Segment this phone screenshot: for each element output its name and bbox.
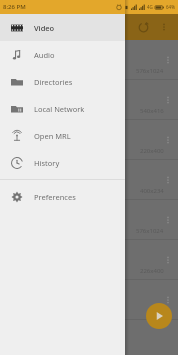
button[interactable]: History (0, 149, 125, 176)
button[interactable]: Play (146, 303, 172, 329)
staticText: Open MRL (34, 131, 71, 141)
staticText: Audio (34, 50, 55, 60)
button[interactable]: 400x234 (0, 160, 178, 200)
staticText: 8:26 PM (3, 3, 26, 11)
staticText: VID_20180101_094061452 (4, 44, 90, 54)
staticText: Local Network (34, 104, 85, 114)
staticText: 4G (147, 4, 153, 10)
button[interactable]: Open MRL (0, 122, 125, 149)
staticText: 576x1024 (136, 67, 164, 75)
button[interactable]: VID_20180101_094061452 (0, 40, 178, 80)
button[interactable]: Video (0, 14, 125, 41)
button[interactable]: 220x400 (0, 120, 178, 160)
button[interactable]: More options (154, 17, 174, 37)
button[interactable]: Item options (161, 133, 175, 147)
button[interactable]: Item options (161, 93, 175, 107)
button[interactable]: Item options (161, 253, 175, 267)
button[interactable]: Audio (0, 41, 125, 68)
button[interactable]: Directories (0, 68, 125, 95)
staticText: Directories (34, 77, 73, 87)
button[interactable]: Item options (161, 213, 175, 227)
staticText: 64% (166, 4, 175, 10)
staticText: 540x416 (140, 107, 164, 115)
button[interactable]: Preferences (0, 183, 125, 210)
button[interactable]: Item options (161, 293, 175, 307)
button[interactable]: IMG-20171203-WA908d411 (0, 200, 178, 240)
button[interactable]: 540x416 (0, 80, 178, 120)
button[interactable]: Local Network (0, 95, 125, 122)
button[interactable]: Item options (161, 173, 175, 187)
staticText: 400x234 (140, 187, 164, 195)
staticText: 576x1024 (136, 227, 164, 235)
button[interactable]: 226x400 (0, 240, 178, 280)
button[interactable]: Item options (161, 53, 175, 67)
staticText: History (34, 158, 60, 168)
button[interactable]: Item options (0, 280, 178, 320)
staticText: Video (34, 23, 55, 33)
staticText: 226x400 (140, 267, 164, 275)
staticText: Preferences (34, 192, 76, 202)
staticText: 220x400 (140, 147, 164, 155)
button[interactable]: Refresh (132, 16, 154, 38)
